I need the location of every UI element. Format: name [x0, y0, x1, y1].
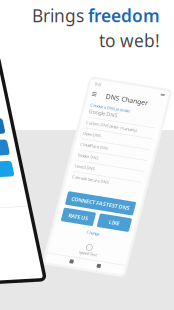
staticText: Choose a DNS provider: [97, 102, 138, 107]
staticText: Level3 DNS: [97, 165, 117, 171]
staticText: CONNECT FASTEST DNS: [102, 198, 161, 205]
staticText: Open DNS: [97, 131, 115, 137]
staticText: Comodo Secure DNS: [97, 177, 134, 182]
staticText: Google DNS: [97, 108, 126, 115]
staticText: Yandex DNS: [97, 154, 118, 159]
staticText: Speed Test: [123, 251, 141, 256]
staticText: CloudFlare DNS: [97, 143, 125, 148]
staticText: RATE US: [104, 215, 124, 222]
staticText: to web!: [99, 29, 160, 52]
staticText: DNS Changer: [110, 89, 153, 98]
staticText: Change: [125, 230, 138, 235]
staticText: 9:41: [96, 80, 103, 86]
staticText: Custom DNS (Enter manually): [97, 120, 149, 125]
staticText: Brings: [32, 4, 84, 27]
staticText: freedom: [88, 4, 160, 27]
